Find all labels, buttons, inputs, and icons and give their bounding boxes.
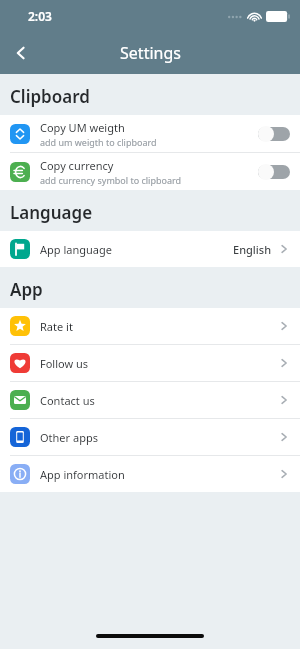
staticText: App language (40, 242, 233, 257)
staticText: App information (40, 467, 278, 482)
button[interactable]: Other apps (0, 419, 300, 455)
staticText: Other apps (40, 430, 278, 445)
staticText: Copy currency (40, 158, 114, 173)
staticText: Follow us (40, 356, 278, 371)
button[interactable]: Copy UM weigth (0, 115, 300, 152)
staticText: English (233, 242, 272, 257)
staticText: Settings (120, 42, 181, 64)
staticText: App (10, 278, 43, 301)
staticText: 2:03 (28, 8, 52, 24)
staticText: add um weigth to clipboard (40, 136, 157, 148)
button[interactable]: Follow us (0, 345, 300, 381)
staticText: Contact us (40, 393, 278, 408)
button[interactable]: App language (0, 231, 300, 267)
staticText: Copy UM weigth (40, 120, 125, 135)
staticText: Language (10, 201, 93, 224)
staticText: Clipboard (10, 85, 90, 108)
button[interactable]: Rate it (0, 308, 300, 344)
button[interactable]: Back (0, 32, 42, 74)
staticText: Rate it (40, 319, 278, 334)
button[interactable]: App information (0, 456, 300, 492)
button[interactable]: Copy currency (0, 153, 300, 190)
button[interactable]: Contact us (0, 382, 300, 418)
staticText: add currency symbol to clipboard (40, 174, 182, 186)
